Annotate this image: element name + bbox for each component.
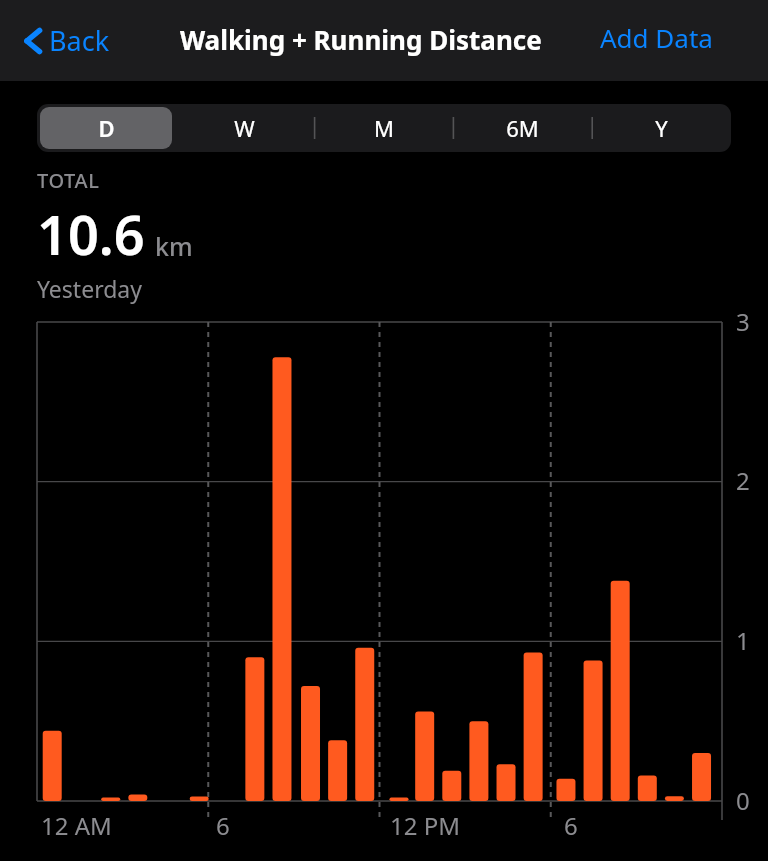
staticText: 6 (564, 809, 578, 842)
staticText: Walking + Running Distance (180, 22, 542, 57)
staticText: 12 AM (41, 809, 112, 842)
button[interactable]: Back (16, 16, 116, 65)
staticText: TOTAL (37, 167, 100, 194)
staticText: Back (49, 22, 110, 59)
staticText: 2 (736, 464, 750, 497)
button[interactable]: M (317, 107, 450, 149)
staticText: 12 PM (390, 809, 460, 842)
button[interactable]: Y (595, 107, 728, 149)
staticText: 3 (736, 305, 750, 338)
button[interactable]: 6M (456, 107, 589, 149)
staticText: W (234, 113, 255, 143)
staticText: 1 (736, 624, 750, 657)
other: Back (22, 25, 44, 57)
staticText: Add Data (600, 20, 713, 55)
button[interactable]: D (40, 107, 172, 149)
staticText: km (155, 229, 193, 263)
staticText: 6M (506, 113, 539, 143)
button[interactable]: Add Data (600, 20, 713, 55)
staticText: Yesterday (37, 273, 142, 304)
staticText: Y (655, 113, 668, 143)
staticText: D (98, 113, 115, 143)
staticText: M (374, 113, 394, 143)
staticText: 10.6 (37, 197, 145, 271)
staticText: 0 (736, 784, 750, 817)
staticText: 6 (216, 809, 230, 842)
button[interactable]: W (178, 107, 311, 149)
